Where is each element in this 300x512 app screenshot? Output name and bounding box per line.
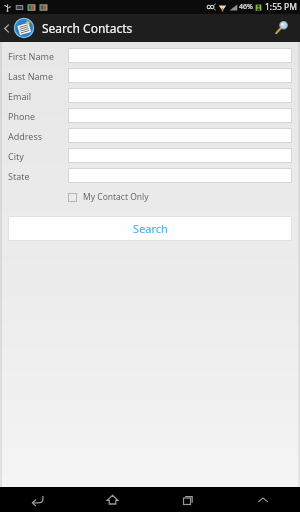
button[interactable]: Up (2, 16, 133, 40)
staticText: State (8, 170, 30, 182)
button[interactable]: Search (268, 15, 294, 41)
staticText: Phone (8, 110, 36, 122)
button[interactable] (68, 128, 292, 143)
staticText: Search (133, 221, 168, 236)
staticText: 46% (239, 2, 253, 12)
staticText: City (8, 150, 24, 162)
button[interactable] (68, 148, 292, 163)
staticText: Search Contacts (42, 20, 133, 36)
staticText: Address (8, 130, 43, 142)
button[interactable] (68, 88, 292, 103)
button[interactable]: My Contact Only (68, 191, 149, 203)
button[interactable]: Search (8, 216, 292, 241)
staticText: First Name (8, 50, 54, 62)
button[interactable]: Home (75, 487, 150, 512)
staticText: Email (8, 90, 32, 102)
button[interactable]: Recent apps (150, 487, 225, 512)
button[interactable]: Show notifications (225, 487, 300, 512)
button[interactable] (68, 68, 292, 83)
staticText: 1:55 PM (265, 1, 297, 13)
staticText: My Contact Only (83, 191, 149, 203)
button[interactable] (68, 108, 292, 123)
staticText: Last Name (8, 70, 54, 82)
button[interactable] (68, 168, 292, 183)
button[interactable] (68, 48, 292, 63)
other: Up (2, 24, 11, 33)
button[interactable]: Back (0, 487, 75, 512)
